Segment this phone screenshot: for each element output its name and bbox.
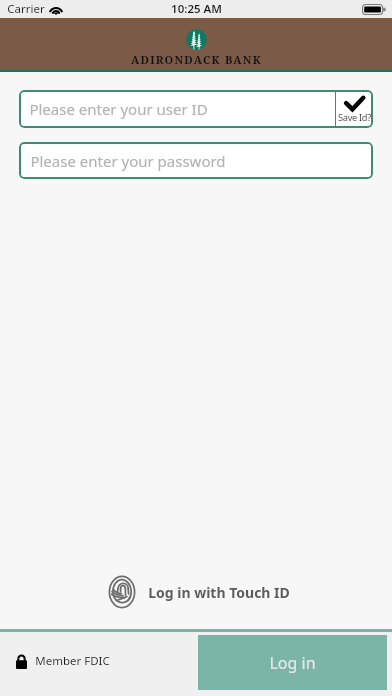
button[interactable]: Save Id	[336, 90, 373, 128]
staticText: Carrier	[7, 1, 45, 17]
staticText: Please enter your password	[30, 151, 226, 171]
staticText: Member FDIC	[35, 653, 110, 669]
button[interactable]: Member FDIC	[0, 632, 392, 690]
staticText: Log in with Touch ID	[148, 583, 290, 602]
staticText: ADIRONDACK BANK	[131, 52, 262, 67]
button[interactable]: Log in with Touch ID	[0, 575, 392, 609]
staticText: Save Id?	[338, 111, 371, 124]
staticText: Log in	[269, 652, 316, 674]
staticText: Please enter your user ID	[29, 99, 208, 119]
button[interactable]: Log in	[198, 635, 387, 690]
button[interactable]: Please enter your password	[19, 142, 373, 179]
staticText: 10:25 AM	[171, 1, 222, 17]
button[interactable]: Please enter your user ID	[19, 90, 335, 128]
